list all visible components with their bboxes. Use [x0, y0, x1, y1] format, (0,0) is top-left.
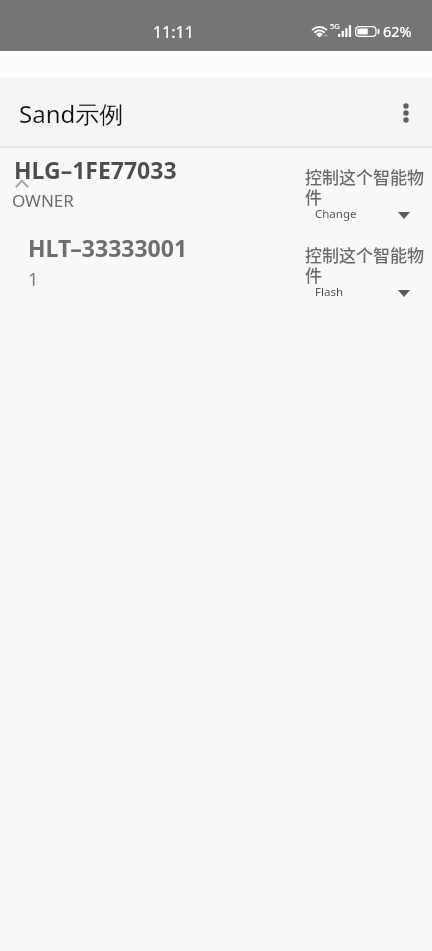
staticText: 11:11	[153, 21, 194, 43]
button[interactable]: More options	[382, 89, 430, 137]
staticText: HLG–1FE77033	[14, 154, 177, 185]
staticText: 62%	[383, 21, 412, 41]
staticText: OWNER	[12, 189, 74, 212]
staticText: 控制这个智能物件	[305, 242, 426, 287]
button[interactable]: Flash	[315, 282, 410, 302]
staticText: 1	[28, 267, 39, 292]
staticText: Sand示例	[19, 97, 124, 130]
staticText: HLT–33333001	[28, 232, 188, 263]
staticText: Change	[315, 206, 357, 222]
staticText: Flash	[315, 284, 344, 300]
staticText: 控制这个智能物件	[305, 164, 426, 209]
button[interactable]: Change	[315, 204, 410, 224]
staticText: 5G	[330, 21, 340, 31]
